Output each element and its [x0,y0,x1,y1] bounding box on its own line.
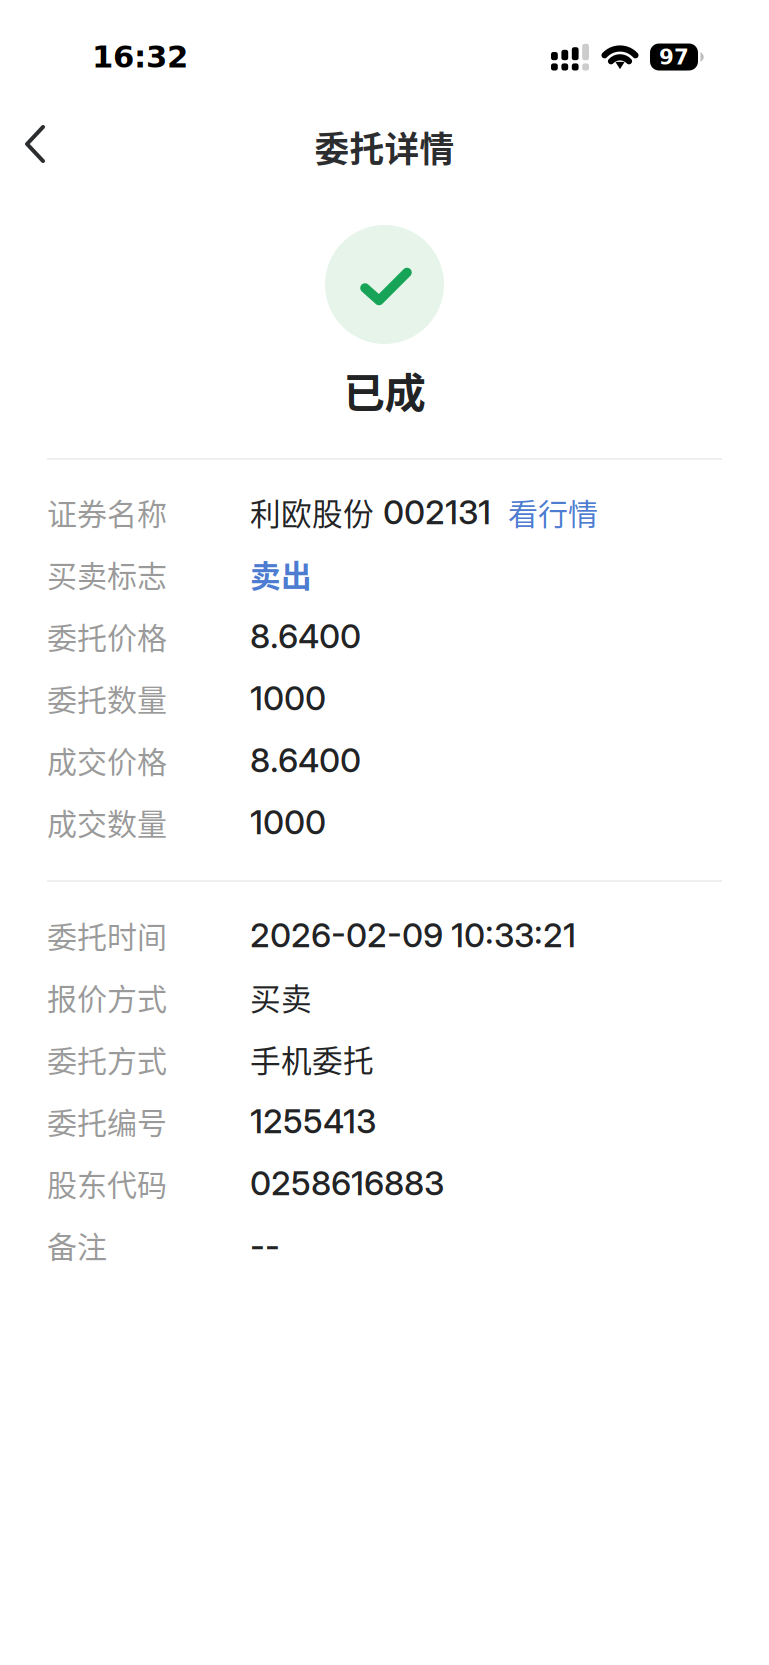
staticText: 成交数量 [47,800,167,844]
staticText: 委托价格 [47,614,167,658]
staticText: 委托方式 [47,1037,167,1081]
staticText: 2026-02-09 10:33:21 [250,915,576,955]
staticText: 0258616883 [250,1163,444,1203]
staticText: 002131 [383,492,491,532]
staticText: 报价方式 [47,975,167,1019]
staticText: 证券名称 [47,490,167,534]
staticText: 买卖 [250,975,312,1019]
staticText: 1000 [250,678,326,718]
staticText: 手机委托 [250,1037,374,1081]
staticText: 股东代码 [47,1161,167,1205]
staticText: 16:32 [92,39,188,75]
staticText: 委托编号 [47,1099,167,1143]
staticText: 备注 [47,1223,107,1267]
staticText: 已成 [343,360,425,420]
staticText: 1255413 [250,1101,376,1141]
staticText: 成交价格 [47,738,167,782]
staticText: 委托数量 [47,676,167,720]
staticText: 买卖标志 [47,552,167,596]
staticText: 委托时间 [47,913,167,957]
staticText: 看行情 [508,490,598,534]
staticText: 利欧股份 [250,490,374,534]
staticText: 8.6400 [250,616,361,656]
staticText: 1000 [250,802,326,842]
staticText: 8.6400 [250,740,361,780]
staticText: 卖出 [250,552,312,596]
staticText: -- [250,1225,280,1265]
button[interactable]: Back [0,111,73,183]
staticText: 委托详情 [314,122,454,172]
button[interactable]: 看行情 [508,490,598,534]
staticText: 97 [659,45,689,69]
